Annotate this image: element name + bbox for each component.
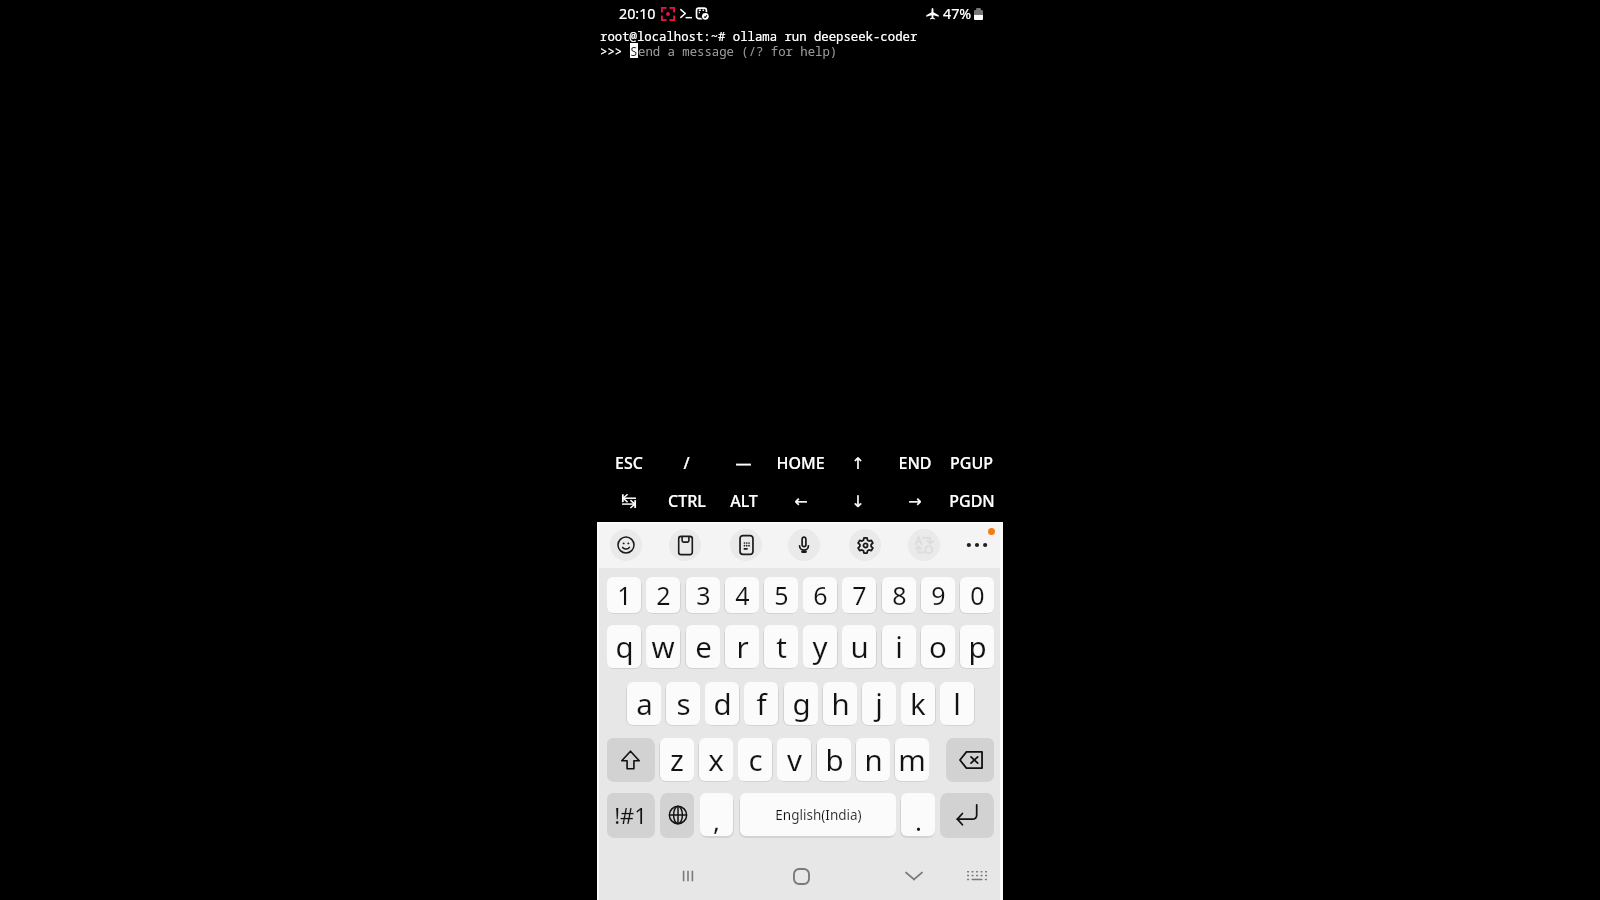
staticText: ←	[794, 492, 808, 511]
button[interactable]: o	[921, 625, 955, 668]
staticText: >>>	[600, 43, 630, 60]
staticText: 4	[735, 578, 750, 612]
button[interactable]: Change language	[661, 793, 694, 836]
button[interactable]: 8	[882, 577, 916, 613]
button[interactable]: r	[725, 625, 759, 668]
button[interactable]: ←	[772, 482, 829, 520]
button[interactable]: 7	[842, 577, 876, 613]
staticText: f	[756, 683, 767, 723]
button[interactable]: Tab	[600, 482, 658, 520]
button[interactable]: PGDN	[943, 482, 1000, 520]
button[interactable]: —	[715, 444, 772, 482]
button[interactable]: a	[627, 682, 661, 725]
button[interactable]: Switch keyboard	[950, 849, 1004, 900]
button[interactable]: Keypad	[730, 529, 762, 561]
staticText: c	[748, 739, 763, 779]
staticText: S	[630, 43, 638, 58]
staticText: p	[968, 626, 987, 666]
button[interactable]: e	[686, 625, 720, 668]
button[interactable]: q	[607, 625, 641, 668]
button[interactable]: 5	[764, 577, 798, 613]
button[interactable]: p	[960, 625, 994, 668]
staticText: z	[670, 739, 684, 779]
button[interactable]: PGUP	[943, 444, 1000, 482]
button[interactable]: More options	[960, 528, 994, 562]
button[interactable]: Enter	[941, 793, 993, 836]
button[interactable]: 0	[960, 577, 994, 613]
staticText: end a message (/? for help)	[638, 43, 838, 60]
button[interactable]: Shift	[607, 738, 654, 781]
button[interactable]: 4	[725, 577, 759, 613]
button[interactable]: CTRL	[658, 482, 715, 520]
button[interactable]: n	[856, 738, 890, 781]
button[interactable]: s	[666, 682, 700, 725]
button[interactable]: i	[882, 625, 916, 668]
button[interactable]: !#1	[607, 793, 654, 836]
staticText: ESC	[615, 452, 643, 474]
button[interactable]: c	[738, 738, 772, 781]
button[interactable]: x	[699, 738, 733, 781]
button[interactable]: w	[646, 625, 680, 668]
button[interactable]: b	[817, 738, 851, 781]
staticText: r	[736, 626, 749, 666]
staticText: ↓	[851, 492, 865, 511]
staticText: 5	[774, 578, 789, 612]
button[interactable]: m	[895, 738, 929, 781]
button[interactable]: g	[784, 682, 818, 725]
button[interactable]: z	[660, 738, 694, 781]
button[interactable]: ↑	[829, 444, 886, 482]
button[interactable]: f	[744, 682, 778, 725]
button[interactable]: ↓	[829, 482, 886, 520]
button[interactable]: .	[901, 793, 935, 836]
staticText: END	[898, 452, 932, 474]
button[interactable]: Emoji	[610, 529, 642, 561]
button[interactable]: Clipboard	[669, 529, 701, 561]
staticText: m	[898, 739, 926, 779]
staticText: 9	[931, 578, 946, 612]
button[interactable]: HOME	[772, 444, 829, 482]
staticText: o	[929, 626, 947, 666]
staticText: 7	[852, 578, 867, 612]
button[interactable]: /	[658, 444, 715, 482]
button[interactable]: ,	[700, 793, 733, 836]
staticText: x	[708, 739, 724, 779]
staticText: ↑	[851, 454, 865, 473]
staticText: e	[695, 626, 712, 666]
button[interactable]: ESC	[600, 444, 658, 482]
button[interactable]: →	[886, 482, 943, 520]
button[interactable]: Backspace	[947, 738, 994, 781]
button[interactable]: d	[705, 682, 739, 725]
staticText: 0	[970, 578, 985, 612]
button[interactable]: Translate	[908, 529, 940, 561]
button[interactable]: 3	[686, 577, 720, 613]
button[interactable]: Home	[774, 849, 828, 900]
staticText: v	[787, 739, 802, 779]
staticText: HOME	[776, 452, 825, 474]
button[interactable]: l	[940, 682, 974, 725]
button[interactable]: j	[862, 682, 896, 725]
button[interactable]: k	[901, 682, 935, 725]
button[interactable]: h	[823, 682, 857, 725]
staticText: !#1	[614, 800, 647, 830]
staticText: /	[683, 452, 690, 474]
button[interactable]: Voice input	[788, 529, 820, 561]
button[interactable]: y	[803, 625, 837, 668]
button[interactable]: Settings	[849, 529, 881, 561]
button[interactable]: t	[764, 625, 798, 668]
button[interactable]: v	[777, 738, 811, 781]
staticText: l	[953, 683, 961, 723]
button[interactable]: END	[886, 444, 943, 482]
button[interactable]: Hide keyboard	[887, 849, 941, 900]
button[interactable]: 1	[607, 577, 641, 613]
staticText: j	[875, 683, 883, 723]
button[interactable]: ALT	[715, 482, 772, 520]
button[interactable]: u	[842, 625, 876, 668]
button[interactable]: 9	[921, 577, 955, 613]
staticText: d	[713, 683, 732, 723]
staticText: .	[915, 803, 922, 836]
button[interactable]: 6	[803, 577, 837, 613]
staticText: root@localhost:~# ollama run deepseek-co…	[600, 28, 918, 45]
button[interactable]: English(India)	[740, 793, 896, 836]
button[interactable]: 2	[646, 577, 680, 613]
button[interactable]: Recent apps	[661, 849, 715, 900]
